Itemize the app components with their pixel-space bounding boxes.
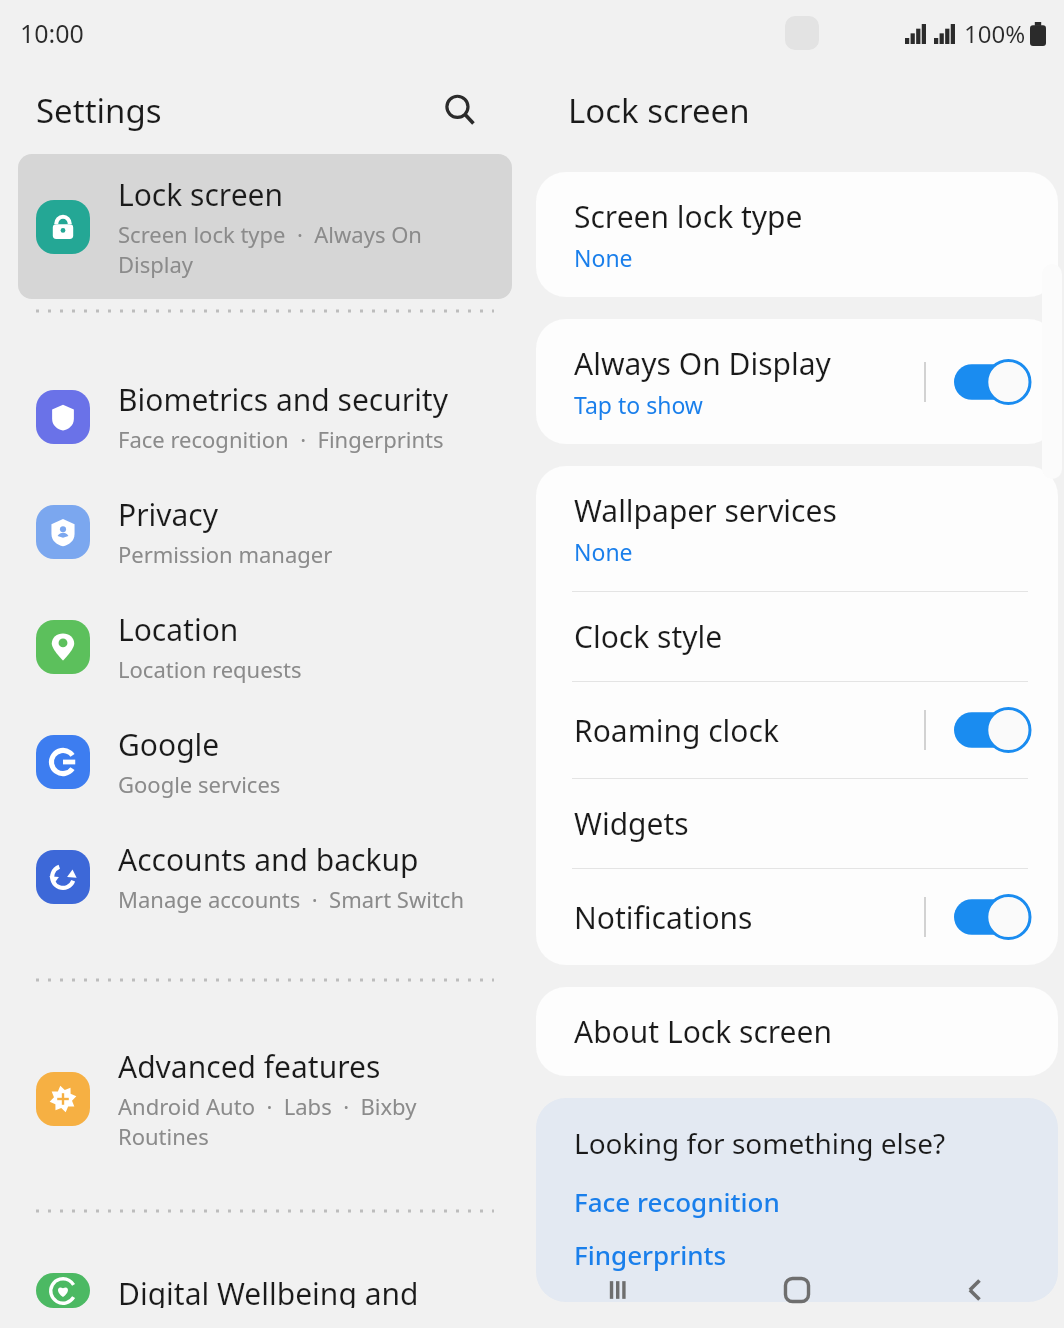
button[interactable]: Toggle Always On Display [954, 358, 1032, 406]
button[interactable]: Home [708, 1252, 886, 1328]
staticText: Tap to show [574, 389, 703, 420]
staticText: Screen lock type · Always On Display [118, 219, 498, 279]
button[interactable]: Biometrics and security [18, 359, 512, 474]
button[interactable]: Digital Wellbeing and parental controls [18, 1253, 512, 1328]
staticText: Location requests [118, 654, 302, 684]
button[interactable]: Location [18, 589, 512, 704]
staticText: None [574, 536, 633, 567]
staticText: Lock screen [118, 174, 284, 215]
staticText: Wallpaper services [574, 490, 837, 531]
button[interactable]: Widgets [536, 779, 1058, 868]
staticText: Looking for something else? [574, 1124, 946, 1162]
staticText: Biometrics and security [118, 379, 448, 420]
button[interactable]: Advanced features [18, 1026, 512, 1171]
staticText: Settings [36, 88, 162, 133]
staticText: Roaming clock [574, 710, 779, 751]
button[interactable]: Fingerprints [574, 1237, 727, 1272]
staticText: Advanced features [118, 1046, 381, 1087]
button[interactable]: Google [18, 704, 512, 819]
button[interactable]: Clock style [536, 592, 1058, 681]
staticText: 10:00 [20, 16, 84, 50]
button[interactable]: Recents [530, 1252, 708, 1328]
button[interactable]: Wallpaper services [536, 466, 1058, 591]
button[interactable]: About Lock screen [536, 987, 1058, 1076]
staticText: 100% [964, 17, 1026, 50]
staticText: Google [118, 724, 220, 765]
staticText: Notifications [574, 897, 753, 938]
button[interactable]: Face recognition [574, 1184, 780, 1219]
button[interactable]: Back [886, 1252, 1064, 1328]
button[interactable]: Accounts and backup [18, 819, 512, 934]
staticText: Accounts and backup [118, 839, 419, 880]
staticText: Face recognition · Fingerprints [118, 424, 444, 454]
staticText: Android Auto · Labs · Bixby Routines [118, 1091, 498, 1151]
staticText: Privacy [118, 494, 219, 535]
button[interactable]: Toggle Notifications [954, 893, 1032, 941]
staticText: Lock screen [568, 88, 750, 133]
staticText: Screen lock type [574, 196, 803, 237]
button[interactable]: Notifications [536, 869, 1058, 965]
button[interactable]: Search [434, 84, 486, 136]
staticText: Location [118, 609, 239, 650]
button[interactable]: Always On Display [536, 319, 1058, 444]
staticText: Widgets [574, 803, 689, 844]
button[interactable]: Toggle Roaming clock [954, 706, 1032, 754]
button[interactable]: Roaming clock [536, 682, 1058, 778]
staticText: Manage accounts · Smart Switch [118, 884, 464, 914]
staticText: Clock style [574, 616, 723, 657]
button[interactable]: Lock screen [18, 154, 512, 299]
button[interactable]: Screen lock type [536, 172, 1058, 297]
staticText: About Lock screen [574, 1011, 832, 1052]
button[interactable]: Privacy [18, 474, 512, 589]
staticText: Google services [118, 769, 281, 799]
staticText: None [574, 242, 633, 273]
staticText: Digital Wellbeing and parental controls [118, 1273, 498, 1308]
staticText: Permission manager [118, 539, 333, 569]
staticText: Always On Display [574, 343, 831, 384]
